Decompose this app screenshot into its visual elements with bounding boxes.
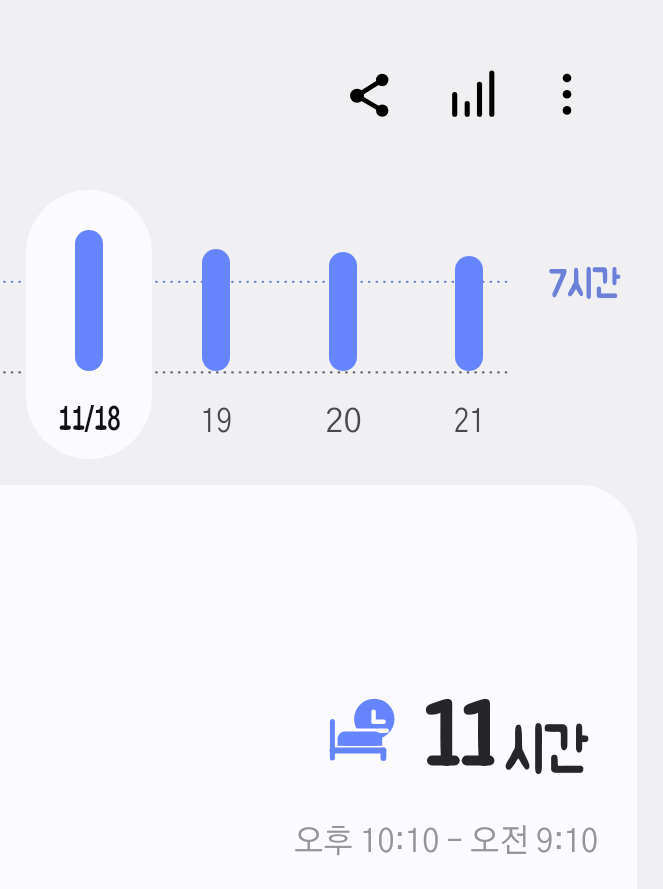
staticText: 11 — [424, 691, 500, 783]
button[interactable]: Share — [334, 60, 406, 132]
button[interactable] — [26, 190, 152, 459]
staticText: 21 — [454, 406, 485, 439]
staticText: 11/18 — [58, 406, 121, 436]
staticText: 7시간 — [548, 266, 621, 305]
staticText: 20 — [325, 406, 362, 439]
staticText: 시간 — [505, 721, 589, 783]
button[interactable]: Statistics — [437, 58, 509, 130]
button[interactable]: Sleep details — [0, 485, 637, 889]
staticText: 오후 10:10 – 오전 9:10 — [294, 826, 598, 859]
button[interactable]: More options — [531, 58, 603, 130]
staticText: 19 — [201, 406, 232, 439]
